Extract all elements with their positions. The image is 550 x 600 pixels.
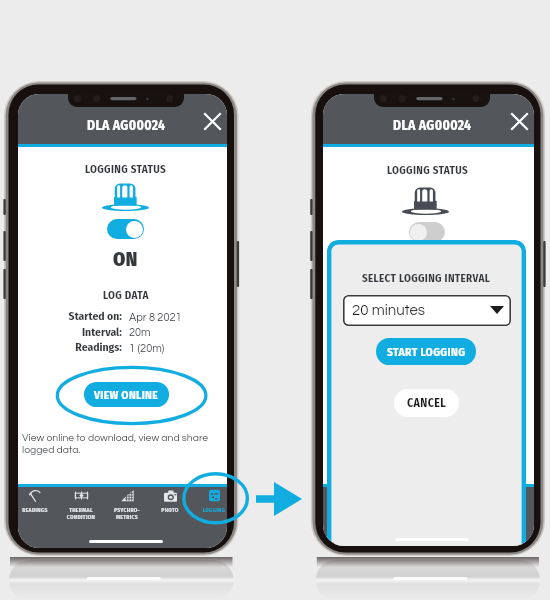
button[interactable]: READINGS bbox=[18, 488, 57, 528]
staticText: Apr 8 2021 bbox=[129, 312, 182, 323]
staticText: VIEW ONLINE bbox=[94, 388, 159, 402]
button[interactable]: Close bbox=[508, 110, 531, 133]
staticText: LOGGING STATUS bbox=[85, 163, 167, 176]
button[interactable]: Close bbox=[201, 110, 224, 133]
button[interactable]: PHOTO bbox=[148, 488, 192, 528]
staticText: CANCEL bbox=[407, 396, 447, 410]
staticText: DLA AG00024 bbox=[393, 117, 472, 133]
staticText: View online to download, view and share … bbox=[22, 432, 209, 455]
button[interactable]: START LOGGING bbox=[376, 338, 476, 365]
button[interactable]: Logging on bbox=[107, 219, 144, 239]
staticText: PSYCHRO- METRICS bbox=[105, 507, 149, 521]
staticText: THERMAL CONDITION bbox=[59, 507, 103, 521]
button[interactable]: THERMAL CONDITION bbox=[59, 488, 103, 528]
button[interactable]: Logging off bbox=[409, 222, 445, 242]
staticText: START LOGGING bbox=[387, 345, 466, 359]
staticText: LOGGING STATUS bbox=[387, 164, 469, 177]
staticText: READINGS bbox=[18, 507, 57, 514]
staticText: Interval: bbox=[18, 325, 122, 339]
staticText: LOG DATA bbox=[103, 289, 149, 302]
button[interactable]: VIEW ONLINE bbox=[84, 382, 169, 407]
button[interactable]: 20 minutes bbox=[343, 295, 511, 326]
staticText: 20m bbox=[129, 327, 151, 338]
staticText: 1 (20m) bbox=[129, 343, 165, 354]
staticText: 20 minutes bbox=[352, 303, 426, 318]
staticText: Started on: bbox=[18, 309, 122, 323]
button[interactable]: CANCEL bbox=[394, 389, 459, 417]
staticText: ON bbox=[113, 248, 138, 271]
staticText: PHOTO bbox=[148, 507, 192, 514]
staticText: SELECT LOGGING INTERVAL bbox=[362, 272, 491, 285]
button[interactable]: PSYCHRO- METRICS bbox=[105, 488, 149, 528]
button[interactable]: LOGGING bbox=[192, 488, 227, 528]
staticText: Readings: bbox=[18, 340, 122, 354]
staticText: DLA AG00024 bbox=[87, 117, 166, 133]
staticText: LOGGING bbox=[192, 507, 227, 514]
